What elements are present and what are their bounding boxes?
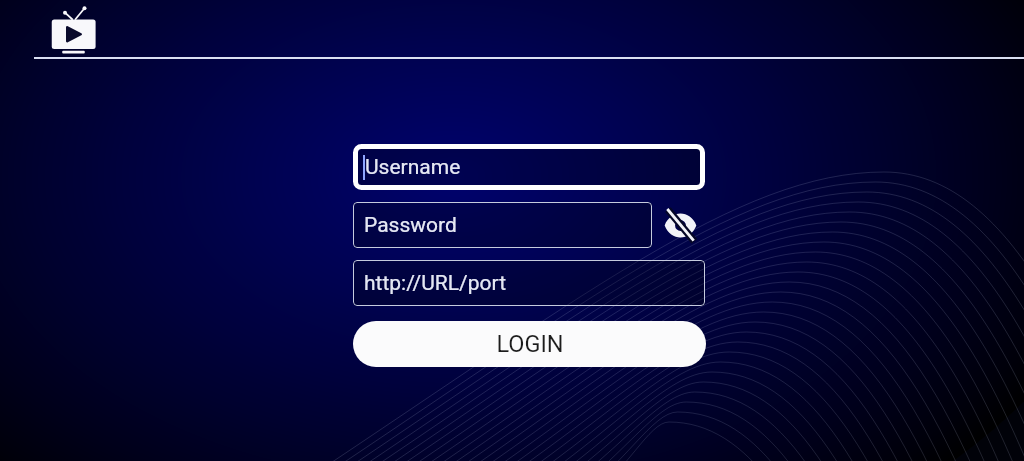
staticText: LOGIN <box>496 330 564 358</box>
button[interactable]: App logo <box>47 1 103 57</box>
staticText: Password <box>364 213 457 238</box>
button[interactable]: Show password <box>661 206 699 244</box>
button[interactable]: http://URL/port <box>353 260 705 306</box>
button[interactable]: Password <box>353 202 652 248</box>
staticText: http://URL/port <box>364 271 507 296</box>
button[interactable]: Username <box>353 144 705 190</box>
button[interactable]: LOGIN <box>353 321 706 367</box>
staticText: Username <box>365 155 461 180</box>
